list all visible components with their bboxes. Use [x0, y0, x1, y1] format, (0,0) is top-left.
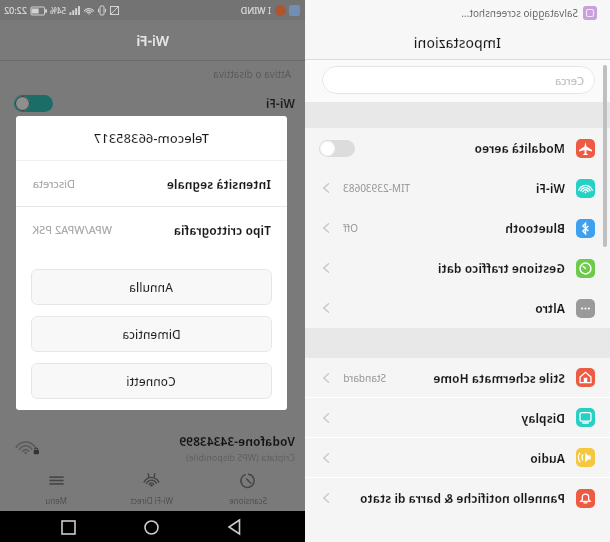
button[interactable]: Gestione traffico dati [305, 248, 610, 288]
staticText: Wi-Fi [136, 31, 169, 50]
button[interactable]: Modalità aereo toggle [319, 140, 355, 157]
staticText: Off [343, 221, 358, 235]
button[interactable]: Annulla [31, 269, 272, 305]
staticText: Scansione [229, 495, 267, 506]
staticText: Tipo crittografia [173, 222, 271, 238]
button[interactable]: Vodafone-34343899 [14, 429, 295, 467]
staticText: Attiva o disattiva [213, 67, 291, 81]
staticText: Wi-Fi Direct [130, 495, 173, 506]
staticText: Standard [343, 371, 386, 385]
button[interactable]: Cerca [322, 66, 595, 94]
button[interactable]: Menu [0, 467, 113, 511]
button[interactable]: Pannello notifiche & barra di stato [305, 478, 610, 518]
staticText: Connetti [126, 373, 176, 389]
staticText: Telecom-66385317 [93, 129, 209, 147]
button[interactable]: Connetti [31, 363, 272, 399]
staticText: Stile schermata Home [433, 370, 565, 386]
staticText: Criptata (WPS disponibile) [186, 451, 295, 463]
staticText: Modalità aereo [474, 140, 565, 156]
button[interactable]: Recents [55, 513, 83, 541]
button[interactable]: Wi-Fi [305, 168, 610, 208]
staticText: Discreta [32, 176, 75, 191]
staticText: Wi-Fi [535, 180, 565, 196]
staticText: WPA/WPA2 PSK [32, 222, 112, 237]
staticText: Dimentica [122, 326, 181, 342]
staticText: 54% [50, 5, 66, 16]
staticText: Altro [535, 300, 565, 316]
staticText: Impostazioni [413, 33, 501, 52]
button[interactable]: Display [305, 398, 610, 437]
button[interactable]: Bluetooth [305, 208, 610, 248]
staticText: Menu [45, 495, 67, 506]
staticText: Cerca [555, 73, 584, 88]
button[interactable]: Home [138, 513, 166, 541]
staticText: 22:02 [3, 4, 27, 16]
button[interactable]: Wi-Fi Direct [113, 467, 191, 511]
staticText: Pannello notifiche & barra di stato [360, 490, 565, 506]
button[interactable]: Stile schermata Home [305, 358, 610, 397]
staticText: Intensità segnale [166, 176, 271, 192]
button[interactable]: Audio [305, 438, 610, 477]
staticText: I WIND [240, 4, 271, 16]
staticText: Wi-Fi [265, 95, 295, 111]
staticText: Annulla [129, 279, 173, 295]
staticText: Vodafone-34343899 [179, 433, 295, 449]
button[interactable] [14, 95, 53, 112]
staticText: Gestione traffico dati [437, 260, 565, 276]
button[interactable]: Altro [305, 288, 610, 328]
staticText: Display [521, 410, 565, 426]
button[interactable]: Dimentica [31, 316, 272, 352]
staticText: TIM-23930683 [343, 181, 410, 195]
button[interactable]: Back [222, 513, 250, 541]
staticText: Bluetooth [505, 220, 565, 236]
button[interactable]: Scansione [191, 467, 305, 511]
button[interactable]: Modalità aereo [305, 128, 610, 168]
staticText: Salvataggio screenshot... [461, 6, 578, 20]
staticText: Audio [530, 450, 565, 466]
